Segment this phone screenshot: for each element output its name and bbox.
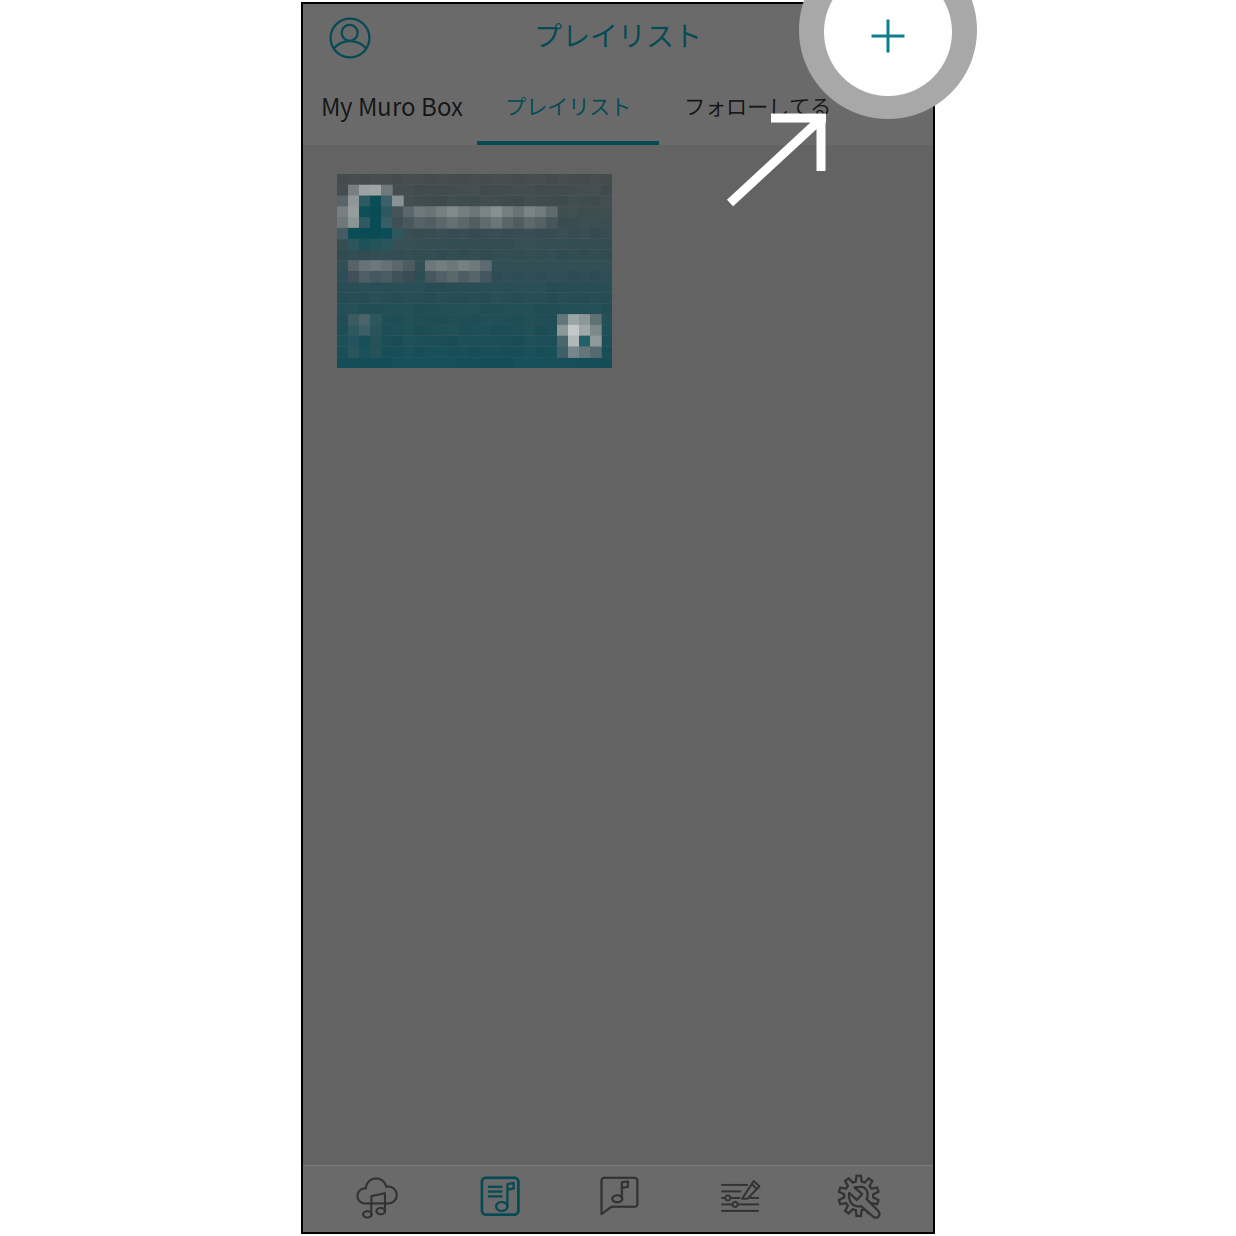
button[interactable]: フォローしてる	[656, 76, 859, 145]
button[interactable]: Account	[315, 7, 377, 73]
button[interactable]: プレイリスト	[480, 76, 656, 145]
button[interactable]: Compose	[678, 1166, 798, 1232]
button[interactable]: Add playlist	[859, 7, 921, 73]
staticText: My Muro Box	[321, 88, 463, 123]
staticText: プレイリスト	[534, 14, 702, 54]
button[interactable]: Settings	[798, 1166, 918, 1232]
button[interactable]: Cloud music	[318, 1166, 438, 1232]
button[interactable]	[337, 174, 612, 368]
staticText: プレイリスト	[505, 90, 631, 121]
button[interactable]: Requests	[558, 1166, 678, 1232]
button[interactable]: Playlists	[438, 1166, 558, 1232]
button[interactable]: My Muro Box	[304, 76, 480, 145]
staticText: フォローしてる	[684, 90, 831, 121]
